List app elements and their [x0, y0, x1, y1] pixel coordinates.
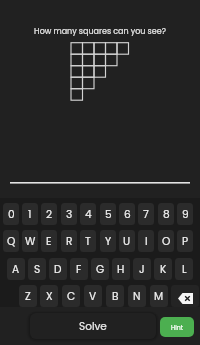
- staticText: C: [67, 289, 76, 304]
- button[interactable]: 3: [61, 203, 77, 225]
- button[interactable]: Z: [19, 285, 37, 307]
- button[interactable]: U: [119, 230, 135, 252]
- staticText: I: [145, 234, 148, 249]
- button[interactable]: V: [84, 285, 102, 307]
- button[interactable]: M: [150, 285, 168, 307]
- staticText: F: [76, 262, 82, 277]
- button[interactable]: F: [70, 258, 88, 280]
- staticText: 0: [8, 207, 15, 222]
- staticText: J: [139, 262, 145, 277]
- button[interactable]: Backspace: [171, 285, 199, 307]
- staticText: Hint: [171, 323, 184, 332]
- staticText: 5: [105, 207, 112, 222]
- staticText: U: [123, 234, 131, 249]
- staticText: L: [182, 262, 187, 277]
- button[interactable]: C: [62, 285, 80, 307]
- button[interactable]: I: [138, 230, 154, 252]
- staticText: 3: [66, 207, 73, 222]
- staticText: W: [25, 234, 36, 249]
- button[interactable]: Hint: [160, 317, 194, 337]
- button[interactable]: 1: [22, 203, 38, 225]
- staticText: A: [12, 262, 20, 277]
- button[interactable]: B: [106, 285, 124, 307]
- button[interactable]: 5: [100, 203, 116, 225]
- button[interactable]: G: [91, 258, 109, 280]
- staticText: V: [89, 289, 97, 304]
- staticText: X: [46, 289, 53, 304]
- staticText: B: [112, 289, 119, 304]
- button[interactable]: S: [28, 258, 46, 280]
- button[interactable]: Solve: [30, 313, 156, 339]
- staticText: O: [162, 234, 171, 249]
- button[interactable]: 9: [177, 203, 193, 225]
- staticText: How many squares can you see?: [34, 26, 166, 37]
- button[interactable]: 7: [138, 203, 154, 225]
- staticText: H: [117, 262, 125, 277]
- staticText: Y: [105, 234, 112, 249]
- staticText: 4: [85, 207, 92, 222]
- staticText: S: [34, 262, 41, 277]
- staticText: N: [133, 289, 141, 304]
- button[interactable]: 4: [80, 203, 96, 225]
- staticText: E: [46, 234, 52, 249]
- staticText: 8: [163, 207, 170, 222]
- staticText: 7: [143, 207, 149, 222]
- button[interactable]: 0: [3, 203, 19, 225]
- staticText: D: [54, 262, 62, 277]
- button[interactable]: K: [154, 258, 172, 280]
- button[interactable]: X: [40, 285, 58, 307]
- button[interactable]: T: [80, 230, 96, 252]
- staticText: 6: [124, 207, 131, 222]
- staticText: P: [182, 234, 189, 249]
- staticText: R: [66, 234, 73, 249]
- staticText: 9: [182, 207, 189, 222]
- staticText: 2: [46, 207, 53, 222]
- staticText: K: [160, 262, 167, 277]
- button[interactable]: 2: [41, 203, 57, 225]
- button[interactable]: P: [177, 230, 193, 252]
- button[interactable]: L: [175, 258, 193, 280]
- staticText: T: [85, 234, 91, 249]
- button[interactable]: E: [41, 230, 57, 252]
- button[interactable]: 8: [158, 203, 174, 225]
- staticText: Solve: [79, 319, 107, 334]
- button[interactable]: R: [61, 230, 77, 252]
- button[interactable]: 6: [119, 203, 135, 225]
- button[interactable]: O: [158, 230, 174, 252]
- staticText: M: [154, 289, 164, 304]
- button[interactable]: Q: [3, 230, 19, 252]
- button[interactable]: H: [112, 258, 130, 280]
- staticText: Q: [7, 234, 16, 249]
- button[interactable]: A: [7, 258, 25, 280]
- button[interactable]: Y: [100, 230, 116, 252]
- staticText: G: [96, 262, 105, 277]
- button[interactable]: D: [49, 258, 67, 280]
- staticText: Z: [25, 289, 31, 304]
- button[interactable]: W: [22, 230, 38, 252]
- staticText: 1: [28, 207, 32, 222]
- button[interactable]: N: [128, 285, 146, 307]
- button[interactable]: J: [133, 258, 151, 280]
